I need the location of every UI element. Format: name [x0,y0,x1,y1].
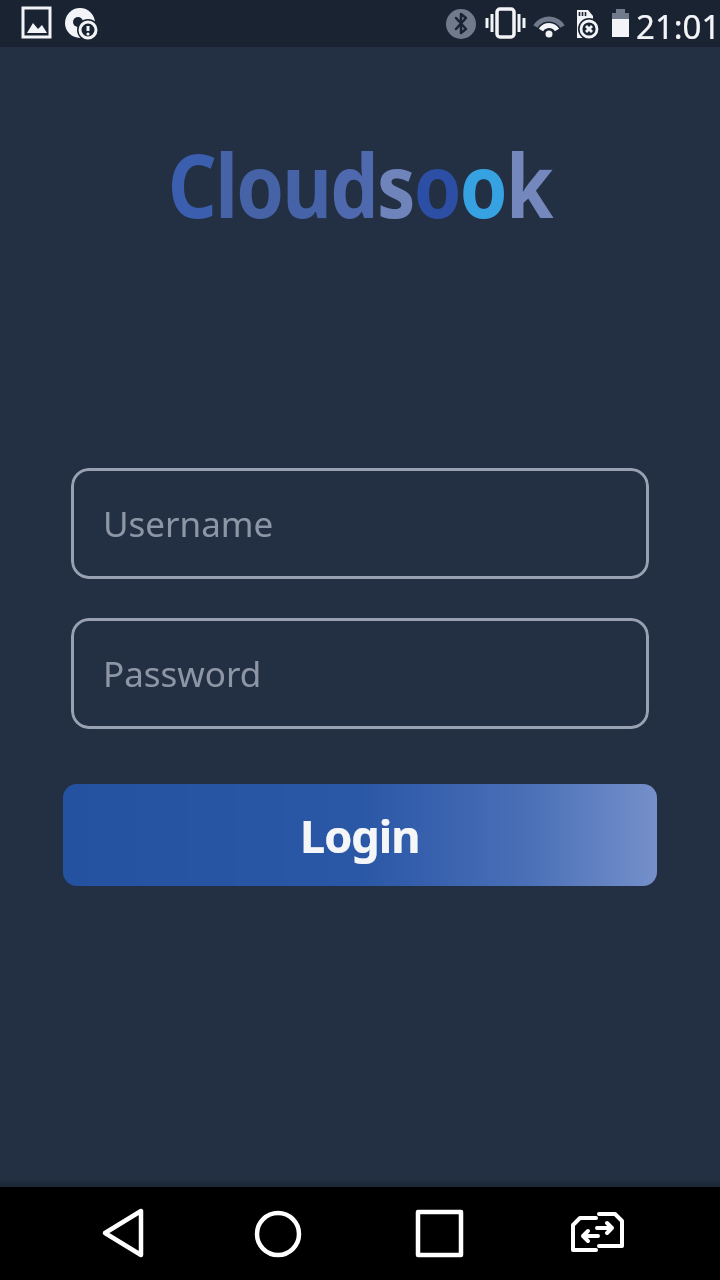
staticText: Login [300,805,420,866]
button[interactable]: Password [71,618,649,729]
staticText: 21:01 [636,4,720,49]
staticText: Cloudsook [168,124,552,244]
button[interactable]: Username [71,468,649,579]
button[interactable]: Login [63,784,657,886]
staticText: Password [103,650,262,698]
staticText: Username [103,500,274,548]
